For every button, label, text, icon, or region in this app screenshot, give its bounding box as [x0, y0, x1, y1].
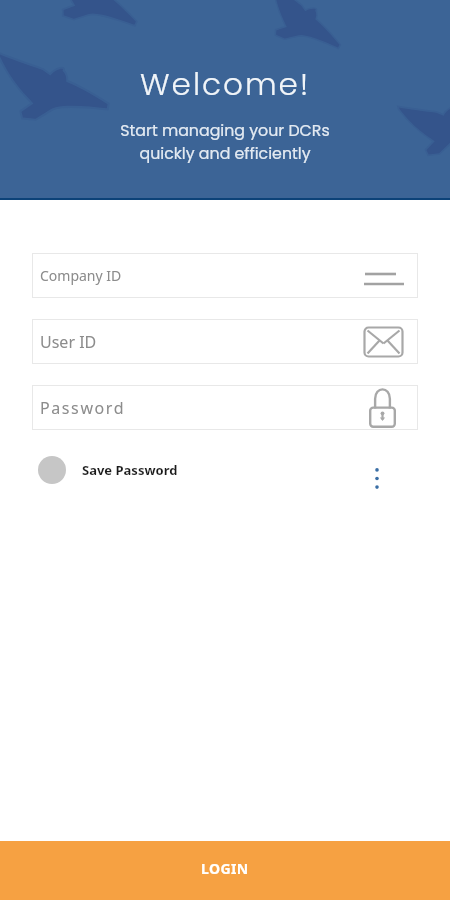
staticText: Welcome! [140, 62, 311, 105]
button[interactable]: User ID [32, 319, 418, 364]
staticText: Save Password [82, 461, 178, 479]
staticText: Company ID [40, 266, 364, 285]
button[interactable]: Save Password [38, 456, 178, 484]
button[interactable]: LOGIN [0, 841, 450, 900]
staticText: Start managing your DCRs quickly and eff… [120, 119, 330, 164]
button[interactable]: Password [32, 385, 418, 430]
button[interactable]: More options [362, 455, 392, 485]
staticText: Password [40, 397, 369, 419]
staticText: User ID [40, 331, 364, 353]
button[interactable]: Company ID [32, 253, 418, 298]
staticText: LOGIN [201, 859, 249, 878]
